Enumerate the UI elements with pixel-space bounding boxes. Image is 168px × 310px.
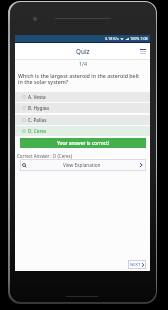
staticText: 1/4	[79, 60, 87, 67]
staticText: Your answer is correct!	[57, 140, 110, 147]
staticText: Quiz	[76, 47, 90, 56]
staticText: Which is the largest asteroid in the ast…	[18, 72, 144, 86]
button[interactable]: Your answer is correct!	[20, 138, 146, 148]
button[interactable]: B. Hygiea	[15, 103, 150, 113]
button[interactable]: Quiz	[15, 43, 150, 59]
button[interactable]: A. Vesta	[15, 92, 150, 102]
staticText: C. Pallas	[28, 117, 47, 123]
button[interactable]: D. Ceres	[15, 126, 150, 136]
staticText: Correct Answer : D (Ceres)	[17, 153, 72, 159]
button[interactable]: C. Pallas	[15, 115, 150, 125]
staticText: 0.18 K/s	[105, 36, 119, 41]
staticText: View Explanation	[63, 162, 101, 168]
button[interactable]: Menu	[137, 46, 148, 57]
staticText: B. Hygiea	[28, 105, 50, 111]
button[interactable]: NEXT	[128, 260, 146, 269]
staticText: A. Vesta	[28, 94, 46, 100]
staticText: D. Ceres	[28, 128, 47, 134]
other: Search	[22, 163, 27, 168]
staticText: NEXT	[130, 262, 141, 268]
button[interactable]: Search	[20, 159, 146, 171]
staticText: 100% 7:08	[130, 36, 148, 41]
